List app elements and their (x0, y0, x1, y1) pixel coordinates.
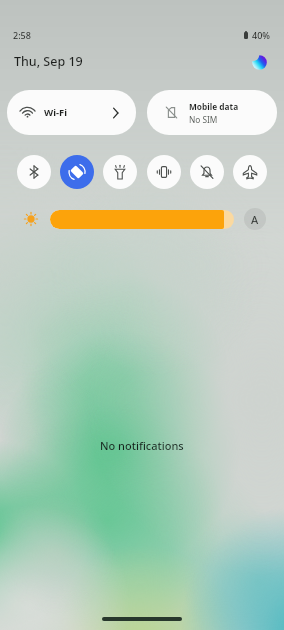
staticText: 2:58 (13, 29, 31, 41)
staticText: No SIM (189, 114, 218, 125)
button[interactable]: Auto rotate (60, 155, 94, 189)
button[interactable]: Airplane mode (233, 155, 267, 189)
staticText: A (251, 212, 259, 227)
staticText: Mobile data (189, 101, 239, 112)
button[interactable]: Flashlight (103, 155, 137, 189)
button[interactable]: Auto brightness (244, 208, 266, 230)
button[interactable]: Do not disturb (190, 155, 224, 189)
button[interactable]: Wi-Fi (7, 90, 136, 135)
staticText: 40% (252, 29, 270, 41)
button[interactable]: Vibrate (147, 155, 181, 189)
staticText: Thu, Sep 19 (14, 53, 83, 70)
button[interactable]: Assistant (248, 51, 270, 73)
staticText: No notifications (100, 438, 184, 453)
button[interactable]: Mobile data (147, 90, 277, 135)
button[interactable]: Bluetooth (17, 155, 51, 189)
staticText: Wi-Fi (44, 106, 68, 119)
button[interactable]: Brightness (50, 210, 234, 229)
